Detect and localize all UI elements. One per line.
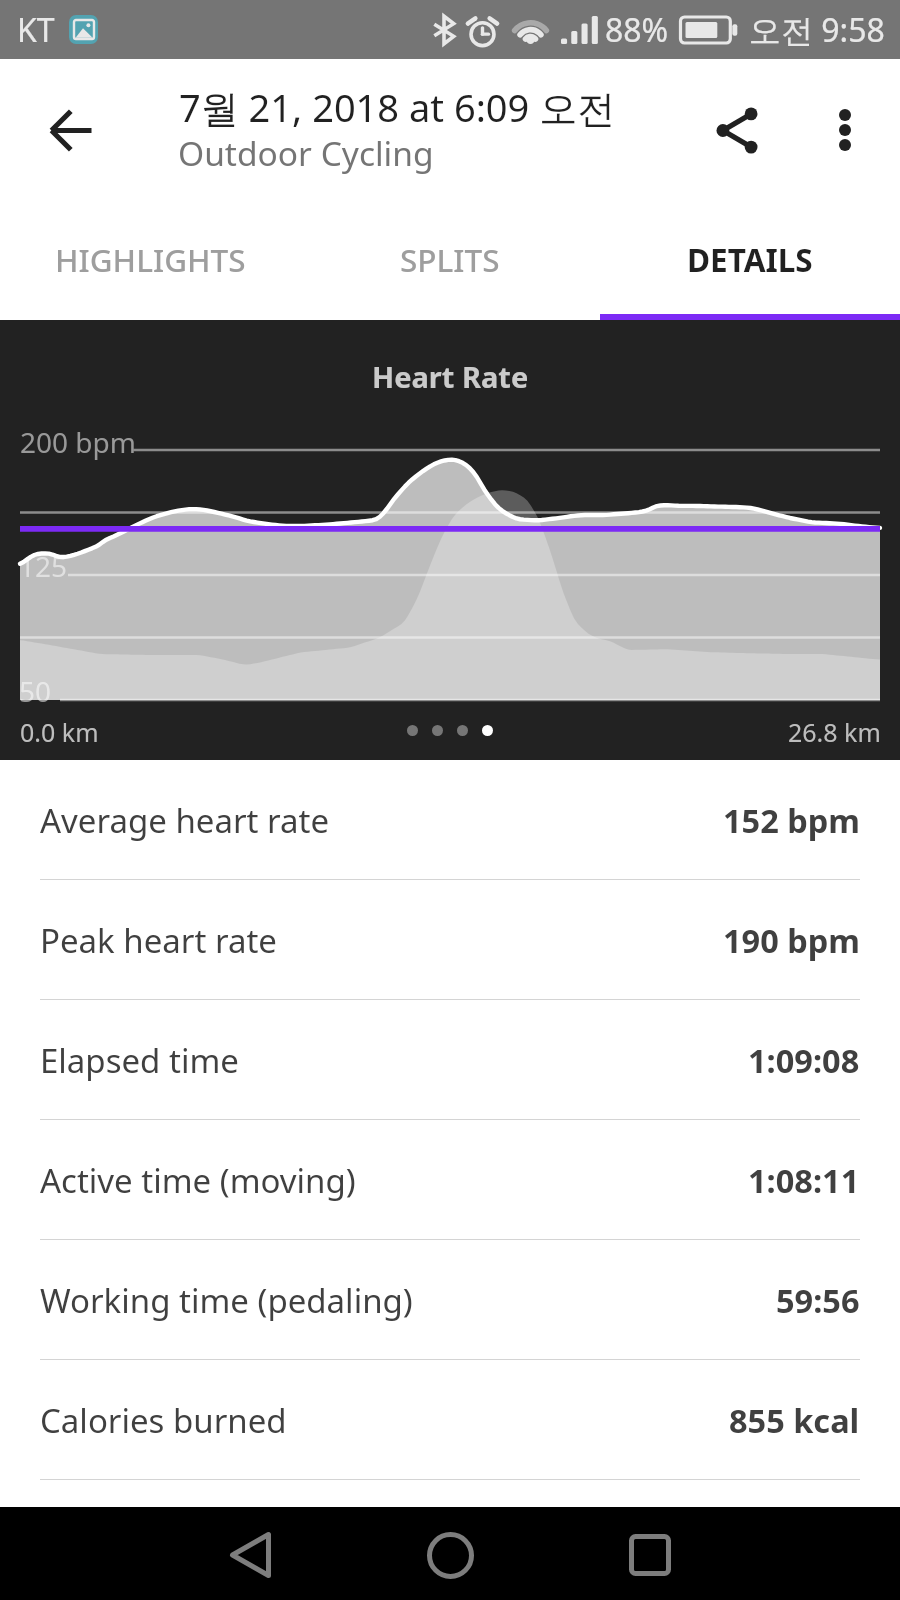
button[interactable]: Home	[410, 1515, 490, 1595]
staticText: Outdoor Cycling	[178, 130, 434, 176]
staticText: Working time (pedaling)	[40, 1278, 413, 1323]
button[interactable]: More options	[810, 95, 880, 165]
staticText: 200 bpm	[20, 423, 136, 461]
staticText: 59:56	[776, 1278, 860, 1322]
button[interactable]: Working time (pedaling)	[0, 1240, 900, 1360]
staticText: KT	[17, 8, 55, 52]
staticText: Elapsed time	[40, 1038, 239, 1083]
button[interactable]: SPLITS	[300, 200, 600, 319]
staticText: Calories burned	[40, 1398, 287, 1443]
staticText: 190 bpm	[723, 918, 860, 962]
button[interactable]: Recents	[610, 1515, 690, 1595]
staticText: SPLITS	[400, 238, 500, 281]
button[interactable]: Peak heart rate	[0, 880, 900, 1000]
staticText: Peak heart rate	[40, 918, 277, 963]
staticText: 1:08:11	[748, 1158, 860, 1202]
staticText: 125	[19, 547, 68, 585]
button[interactable]: Elapsed time	[0, 1000, 900, 1120]
staticText: Active time (moving)	[40, 1158, 356, 1203]
staticText: 88%	[605, 8, 669, 52]
button[interactable]: Average heart rate	[0, 760, 900, 880]
staticText: 1:09:08	[748, 1038, 860, 1082]
staticText: Heart Rate	[372, 357, 529, 396]
button[interactable]: Calories burned	[0, 1360, 900, 1480]
staticText: HIGHLIGHTS	[55, 238, 246, 281]
button[interactable]: Back	[36, 95, 106, 165]
staticText: 오전 9:58	[749, 8, 885, 52]
staticText: 26.8 km	[788, 715, 881, 749]
button[interactable]: HIGHLIGHTS	[0, 200, 300, 319]
staticText: 7월 21, 2018 at 6:09 오전	[179, 81, 616, 133]
button[interactable]: Back	[210, 1515, 290, 1595]
staticText: DETAILS	[687, 238, 813, 281]
staticText: 152 bpm	[723, 798, 860, 842]
button[interactable]: Active time (moving)	[0, 1120, 900, 1240]
staticText: 855 kcal	[729, 1398, 860, 1442]
button[interactable]: Share	[702, 95, 772, 165]
button[interactable]: DETAILS	[600, 200, 900, 319]
staticText: 0.0 km	[20, 715, 99, 749]
staticText: Average heart rate	[40, 798, 330, 843]
staticText: 50	[19, 672, 52, 710]
